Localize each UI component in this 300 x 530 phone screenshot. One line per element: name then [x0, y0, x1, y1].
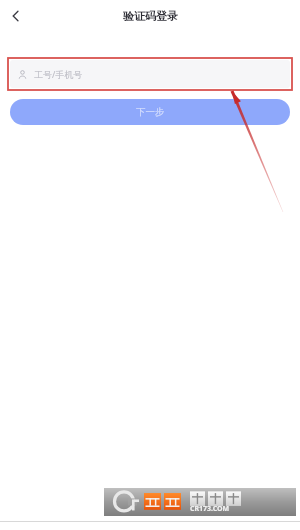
staticText: 工号/手机号 — [34, 68, 83, 80]
button[interactable]: 下一步 — [10, 99, 290, 125]
staticText: 下一步 — [136, 106, 165, 118]
staticText: 验证码登录 — [123, 9, 178, 23]
button[interactable]: Back — [2, 2, 30, 30]
staticText: CR173.COM — [190, 504, 230, 514]
button[interactable]: 工号/手机号 — [10, 60, 290, 88]
